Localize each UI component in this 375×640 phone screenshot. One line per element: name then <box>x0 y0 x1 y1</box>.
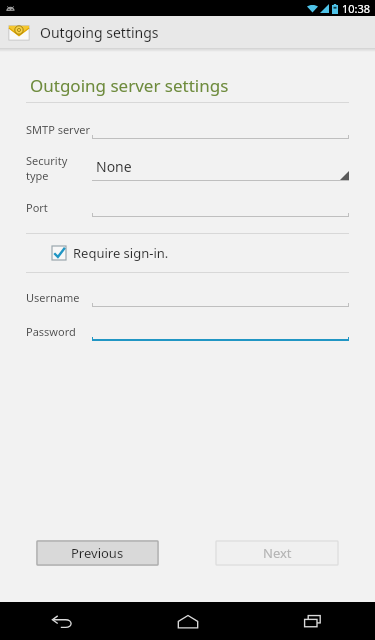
button[interactable]: Recent apps <box>250 602 375 640</box>
button[interactable]: Password <box>0 321 375 341</box>
button[interactable]: Port <box>0 197 375 217</box>
staticText: SMTP server <box>26 122 90 137</box>
button[interactable]: Username <box>0 287 375 307</box>
button[interactable]: Outgoing settings <box>0 16 375 48</box>
staticText: 10:38 <box>342 1 371 16</box>
button[interactable]: Require sign-in. <box>0 234 375 272</box>
button[interactable]: SMTP server <box>0 119 375 139</box>
staticText: Next <box>263 544 292 562</box>
staticText: Username <box>26 290 80 305</box>
button[interactable]: Home <box>125 602 250 640</box>
staticText: Outgoing settings <box>40 23 159 42</box>
staticText: None <box>96 157 132 176</box>
staticText: Outgoing server settings <box>30 74 229 97</box>
staticText: Previous <box>71 544 124 562</box>
staticText: Password <box>26 324 76 339</box>
button[interactable]: Previous <box>36 540 159 566</box>
staticText: Require sign-in. <box>73 244 169 262</box>
staticText: Port <box>26 200 48 215</box>
button[interactable]: Security type <box>0 153 375 183</box>
staticText: Security type <box>26 153 92 183</box>
button[interactable]: Back <box>0 602 125 640</box>
button[interactable]: Next <box>215 540 339 566</box>
